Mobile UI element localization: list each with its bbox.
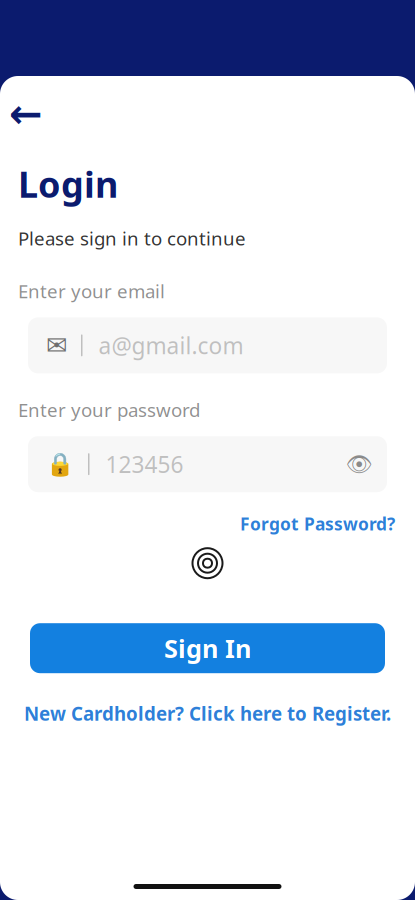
staticText: ← (9, 91, 43, 137)
staticText: Enter your email (18, 279, 165, 303)
staticText: Sign In (164, 631, 251, 665)
button[interactable]: Sign in with fingerprint (185, 541, 229, 585)
button[interactable]: Show password (339, 444, 379, 484)
button[interactable]: Sign In (30, 623, 385, 673)
staticText: Enter your password (18, 397, 200, 422)
staticText: 👁 (345, 452, 372, 476)
staticText: ✉ (46, 331, 67, 360)
staticText: 123456 (105, 449, 183, 479)
staticText: a@gmail.com (98, 330, 243, 360)
staticText: Please sign in to continue (18, 226, 246, 251)
staticText: Forgot Password? (240, 512, 395, 535)
staticText: Login (18, 160, 118, 208)
button[interactable]: Forgot Password? (240, 512, 395, 535)
button[interactable]: Back (4, 92, 48, 136)
staticText: New Cardholder? Click here to Register. (24, 701, 391, 726)
staticText: 🔒 (46, 451, 74, 477)
button[interactable]: New Cardholder? Click here to Register. (24, 701, 391, 726)
